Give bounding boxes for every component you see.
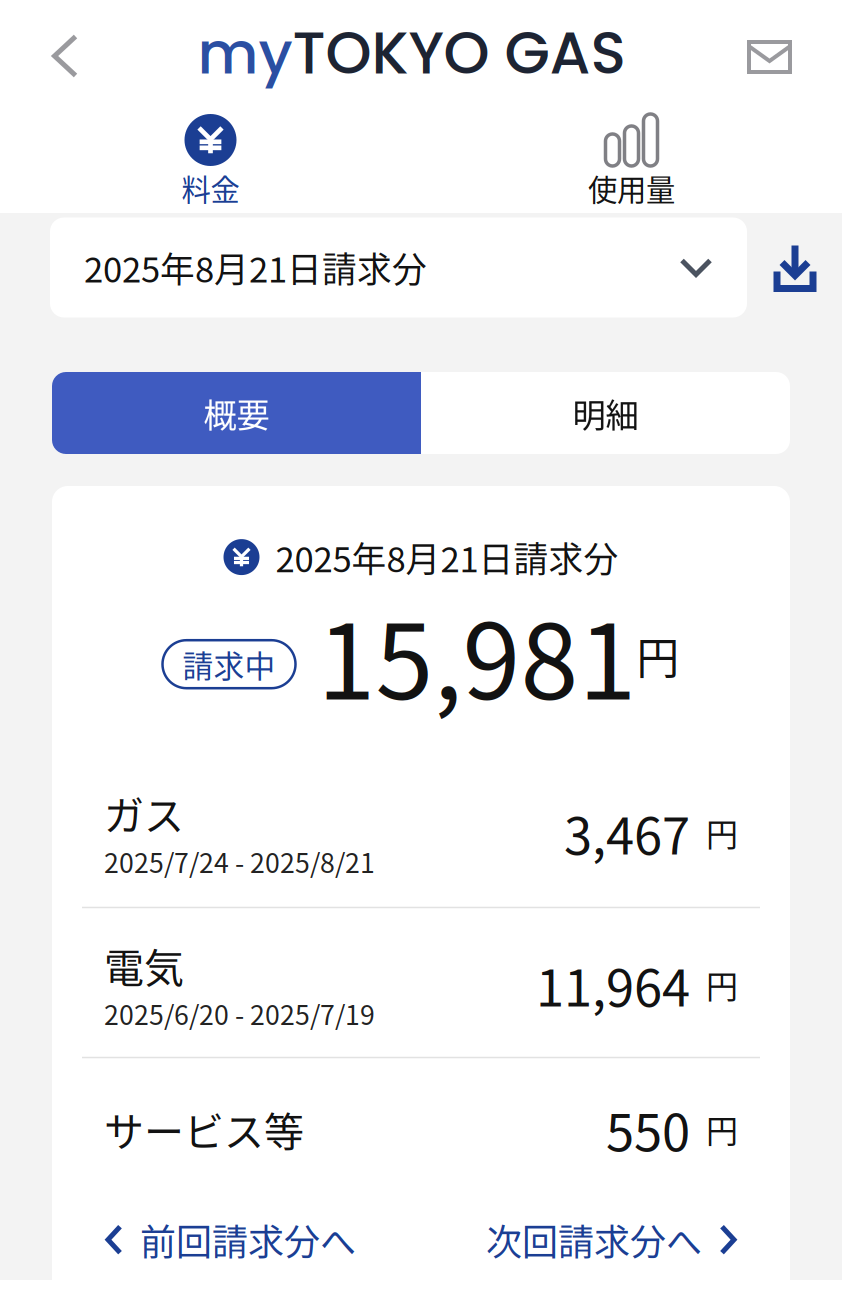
- staticText: 11,964: [536, 948, 690, 1021]
- staticText: 2025年8月21日請求分: [84, 242, 427, 293]
- staticText: 15,981: [317, 579, 636, 729]
- button[interactable]: Back: [0, 0, 104, 100]
- button[interactable]: 2025年8月21日請求分: [50, 217, 747, 317]
- staticText: 円: [706, 1106, 738, 1152]
- staticText: 請求中: [182, 642, 275, 686]
- button[interactable]: Mail: [719, 0, 842, 100]
- staticText: 2025/7/24 - 2025/8/21: [104, 842, 375, 881]
- staticText: 円: [706, 961, 738, 1008]
- button[interactable]: 明細: [421, 372, 790, 454]
- button[interactable]: Download: [747, 241, 842, 293]
- staticText: 明細: [572, 389, 638, 437]
- staticText: TOKYO GAS: [292, 12, 625, 94]
- staticText: ガス: [104, 784, 184, 842]
- button[interactable]: 料金: [0, 114, 421, 201]
- button[interactable]: 使用量: [421, 114, 842, 201]
- staticText: 次回請求分へ: [486, 1214, 702, 1266]
- button[interactable]: 前回請求分へ: [104, 1214, 356, 1266]
- staticText: 円: [636, 624, 679, 686]
- staticText: 円: [706, 809, 738, 856]
- staticText: 2025年8月21日請求分: [275, 532, 618, 582]
- staticText: サービス等: [104, 1100, 304, 1158]
- button[interactable]: 次回請求分へ: [486, 1214, 738, 1266]
- staticText: 電気: [104, 936, 184, 994]
- button[interactable]: 概要: [52, 372, 421, 454]
- staticText: 前回請求分へ: [140, 1214, 356, 1266]
- staticText: 概要: [203, 389, 269, 437]
- staticText: 使用量: [588, 167, 675, 209]
- staticText: 料金: [181, 167, 239, 209]
- staticText: 3,467: [564, 796, 690, 869]
- staticText: 550: [606, 1092, 690, 1166]
- staticText: my: [197, 12, 292, 94]
- staticText: 2025/6/20 - 2025/7/19: [104, 994, 375, 1033]
